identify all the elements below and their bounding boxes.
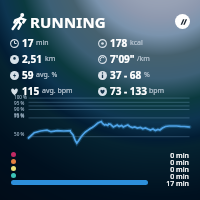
button[interactable]: 17 min (0, 179, 200, 186)
staticText: kcal (130, 38, 143, 48)
staticText: min (36, 38, 49, 48)
staticText: /km (137, 54, 150, 64)
staticText: 100 % (14, 94, 27, 100)
button[interactable]: 0 min (0, 151, 200, 158)
staticText: 178 (110, 36, 128, 50)
staticText: 0 min (161, 151, 189, 158)
staticText: 75 % (14, 113, 25, 119)
staticText: 95 % (14, 100, 25, 106)
staticText: 0 min (161, 172, 189, 179)
staticText: 90 % (14, 106, 25, 112)
staticText: avg. bpm (42, 86, 73, 96)
staticText: 17 min (161, 179, 189, 186)
staticText: 50 % (14, 131, 25, 137)
staticText: RUNNING (30, 12, 106, 32)
staticText: 0 min (161, 165, 189, 172)
button[interactable]: 0 min (0, 158, 200, 165)
staticText: 73 - 133 (110, 84, 147, 98)
staticText: 0 min (161, 158, 189, 165)
staticText: 17 (22, 36, 34, 50)
staticText: 85 % (14, 112, 25, 118)
staticText: 59 (22, 68, 34, 82)
staticText: bpm (149, 86, 165, 96)
staticText: avg. % (36, 70, 58, 80)
staticText: km (45, 54, 56, 64)
staticText: % (144, 70, 150, 80)
staticText: 115 (22, 84, 40, 98)
staticText: 7'09" (110, 52, 135, 66)
staticText: 2,51 (22, 52, 43, 66)
button[interactable]: 0 min (0, 172, 200, 179)
button[interactable]: 0 min (0, 165, 200, 172)
button[interactable]: Polar (175, 14, 190, 29)
staticText: 37 - 68 (110, 68, 142, 82)
